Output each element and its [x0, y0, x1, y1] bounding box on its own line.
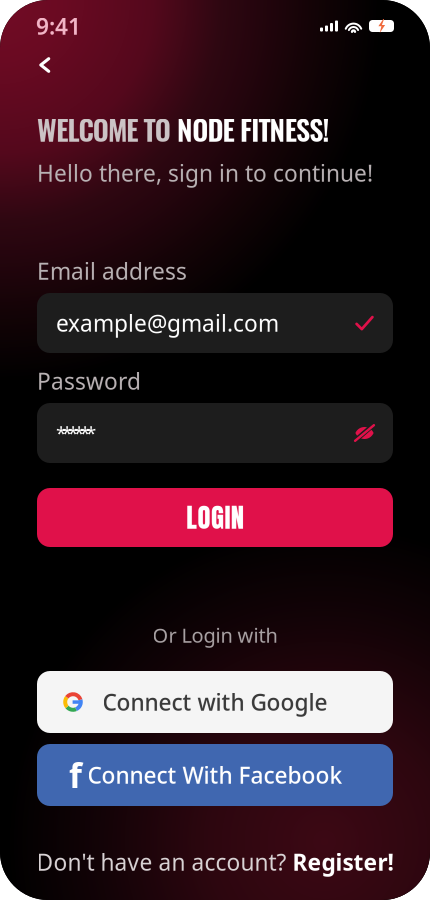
staticText: Email address — [37, 256, 187, 286]
staticText: NODE FITNESS! — [177, 108, 329, 150]
staticText: Or Login with — [152, 622, 277, 648]
staticText: Don't have an account? — [36, 847, 286, 877]
staticText: ****** — [56, 421, 96, 445]
staticText: WELCOME TO — [37, 108, 177, 150]
staticText: example@gmail.com — [56, 308, 279, 338]
staticText: Hello there, sign in to continue! — [37, 158, 373, 188]
staticText: 9:41 — [36, 11, 81, 41]
staticText: Connect With Facebook — [87, 760, 342, 790]
button[interactable]: Connect with Google — [37, 671, 393, 733]
button[interactable]: LOGIN — [37, 488, 393, 547]
button[interactable]: Connect With Facebook — [37, 744, 393, 806]
staticText: LOGIN — [186, 497, 244, 537]
button[interactable]: Don't have an account? — [0, 850, 430, 874]
staticText: f — [69, 753, 82, 797]
staticText: Connect with Google — [102, 687, 327, 717]
staticText: Register! — [292, 847, 393, 877]
button[interactable]: Back — [0, 49, 68, 81]
staticText: Password — [37, 366, 141, 396]
